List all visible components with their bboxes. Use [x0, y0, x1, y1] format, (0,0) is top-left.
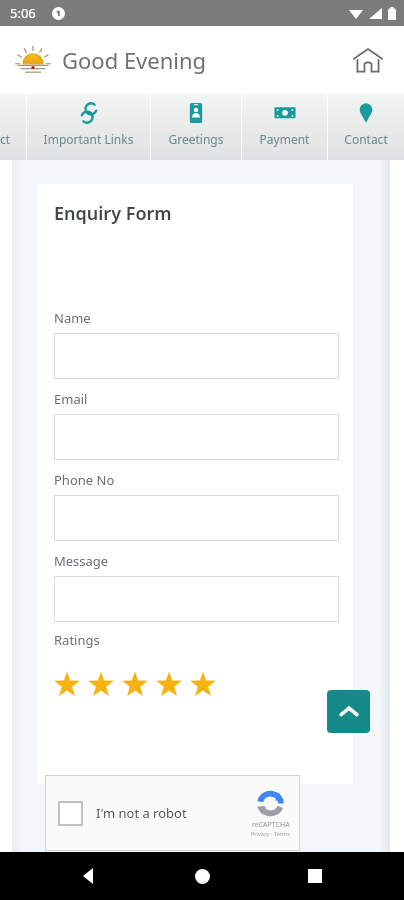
button[interactable]	[54, 672, 216, 698]
staticText: Contact	[328, 131, 404, 147]
staticText: Phone No	[54, 471, 115, 489]
button[interactable]: Payment	[242, 94, 327, 160]
button[interactable]: ct	[0, 94, 26, 160]
staticText: Good Evening	[62, 45, 207, 75]
staticText: reCAPTCHA	[252, 820, 290, 830]
staticText: 5:06	[10, 4, 36, 22]
button[interactable]: Home	[178, 852, 226, 900]
button[interactable]: I'm not a robot	[45, 775, 300, 851]
button[interactable]: Recent apps	[291, 852, 339, 900]
button[interactable]: Scroll to top	[327, 690, 370, 733]
staticText: Payment	[242, 131, 327, 147]
button[interactable]	[54, 576, 339, 622]
button[interactable]	[54, 333, 339, 379]
staticText: Ratings	[54, 631, 100, 649]
staticText: Enquiry Form	[54, 201, 172, 226]
button[interactable]: Greetings	[151, 94, 241, 160]
button[interactable]: Contact	[328, 94, 404, 160]
button[interactable]: Important Links	[27, 94, 150, 160]
staticText: I'm not a robot	[96, 804, 187, 822]
staticText: Privacy - Terms	[251, 830, 290, 837]
button[interactable]	[54, 495, 339, 541]
button[interactable]	[54, 414, 339, 460]
staticText: Name	[54, 309, 91, 327]
staticText: Important Links	[27, 131, 150, 147]
staticText: Greetings	[151, 131, 241, 147]
staticText: Email	[54, 390, 88, 408]
button[interactable]: Home	[344, 36, 392, 84]
staticText: Message	[54, 552, 109, 570]
button[interactable]: Back	[65, 852, 113, 900]
staticText: ct	[0, 131, 26, 147]
